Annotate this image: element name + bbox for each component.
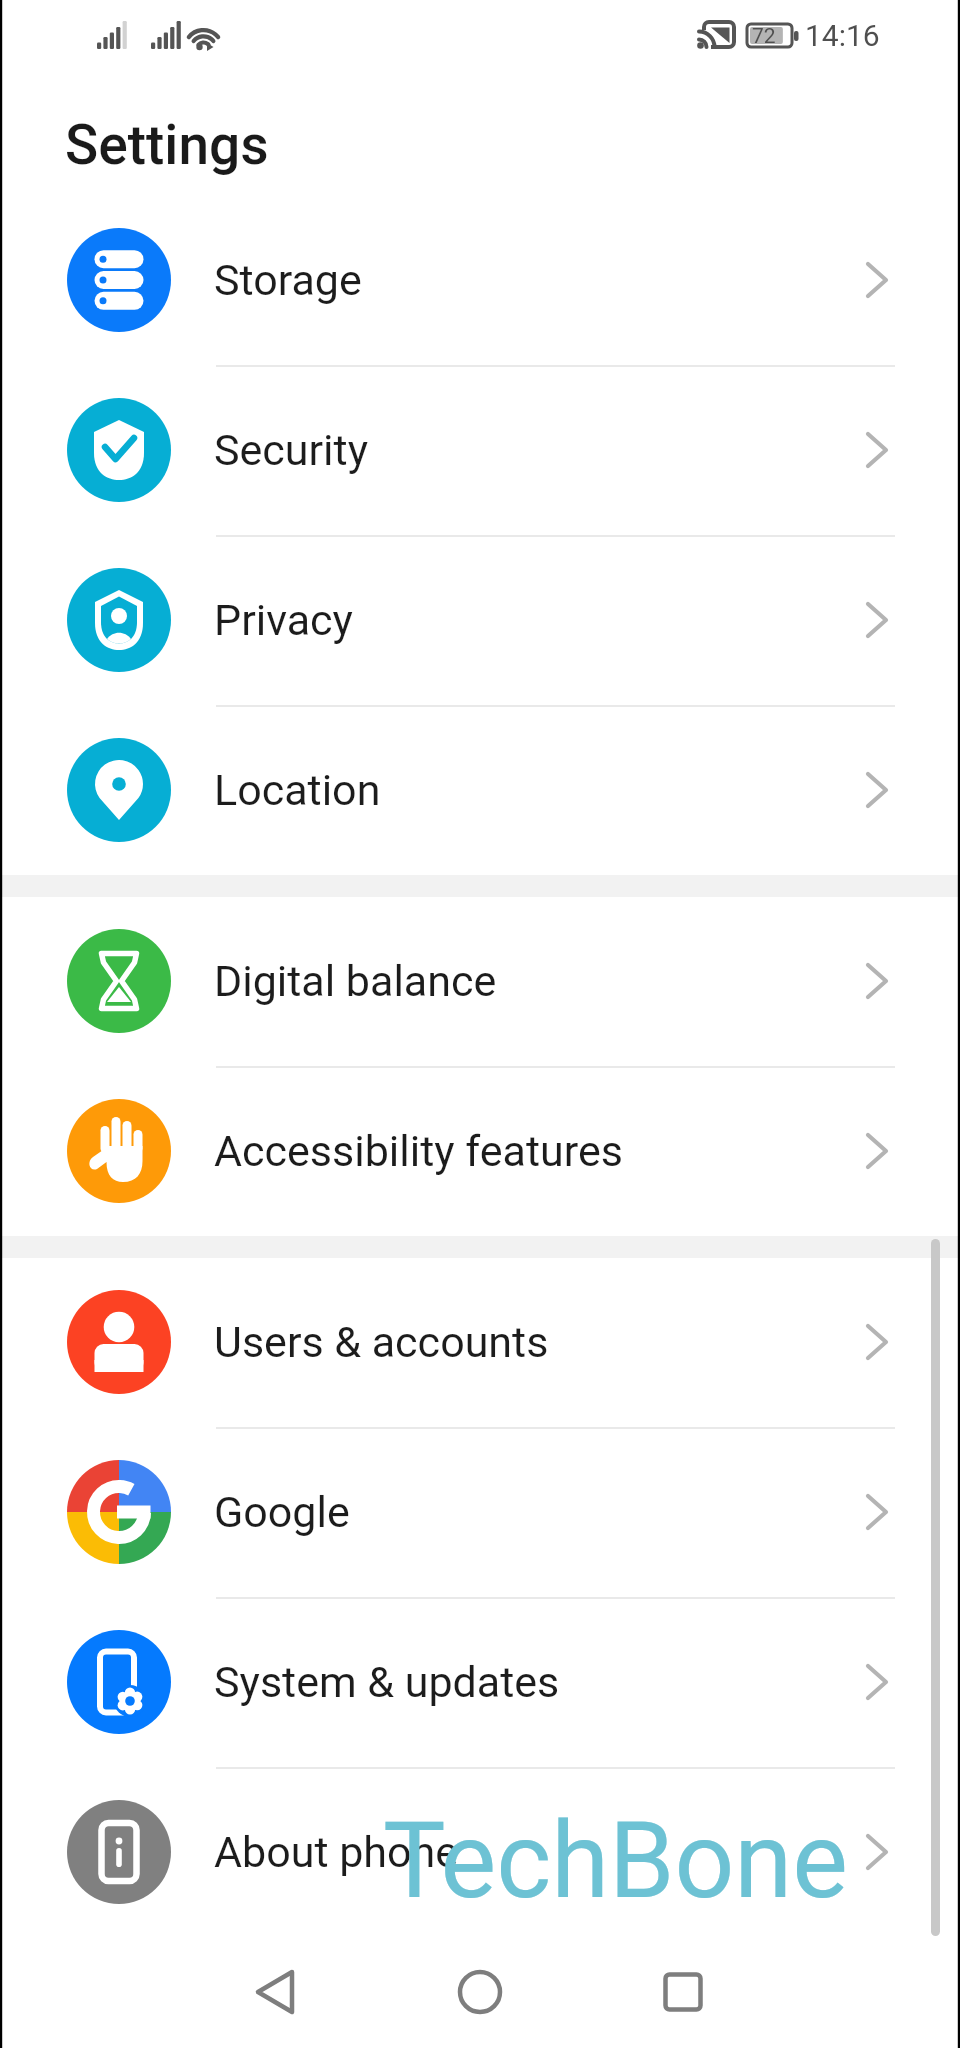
staticText: 14:16 bbox=[805, 18, 880, 53]
staticText: Settings bbox=[65, 113, 269, 177]
button[interactable]: Recent apps bbox=[603, 1938, 763, 2048]
button[interactable]: Privacy bbox=[0, 535, 960, 705]
button[interactable]: Security bbox=[0, 365, 960, 535]
staticText: Users & accounts bbox=[214, 1317, 549, 1367]
staticText: Accessibility features bbox=[214, 1126, 623, 1176]
staticText: 72 bbox=[752, 24, 776, 49]
button[interactable]: Storage bbox=[0, 195, 960, 365]
button[interactable]: Location bbox=[0, 705, 960, 875]
staticText: Digital balance bbox=[214, 956, 497, 1006]
staticText: Google bbox=[214, 1487, 350, 1537]
button[interactable]: About phone bbox=[0, 1767, 960, 1937]
staticText: TechBone bbox=[383, 1800, 849, 1923]
staticText: Security bbox=[214, 425, 368, 475]
button[interactable]: Accessibility features bbox=[0, 1066, 960, 1236]
staticText: Storage bbox=[214, 255, 362, 305]
staticText: Location bbox=[214, 765, 381, 815]
button[interactable]: Users & accounts bbox=[0, 1257, 960, 1427]
button[interactable]: System & updates bbox=[0, 1597, 960, 1767]
button[interactable]: Home bbox=[400, 1938, 560, 2048]
staticText: System & updates bbox=[214, 1657, 560, 1707]
button[interactable]: Google bbox=[0, 1427, 960, 1597]
button[interactable]: Digital balance bbox=[0, 896, 960, 1066]
staticText: About phone bbox=[214, 1827, 459, 1877]
button[interactable]: Back bbox=[195, 1938, 355, 2048]
staticText: Privacy bbox=[214, 595, 353, 645]
